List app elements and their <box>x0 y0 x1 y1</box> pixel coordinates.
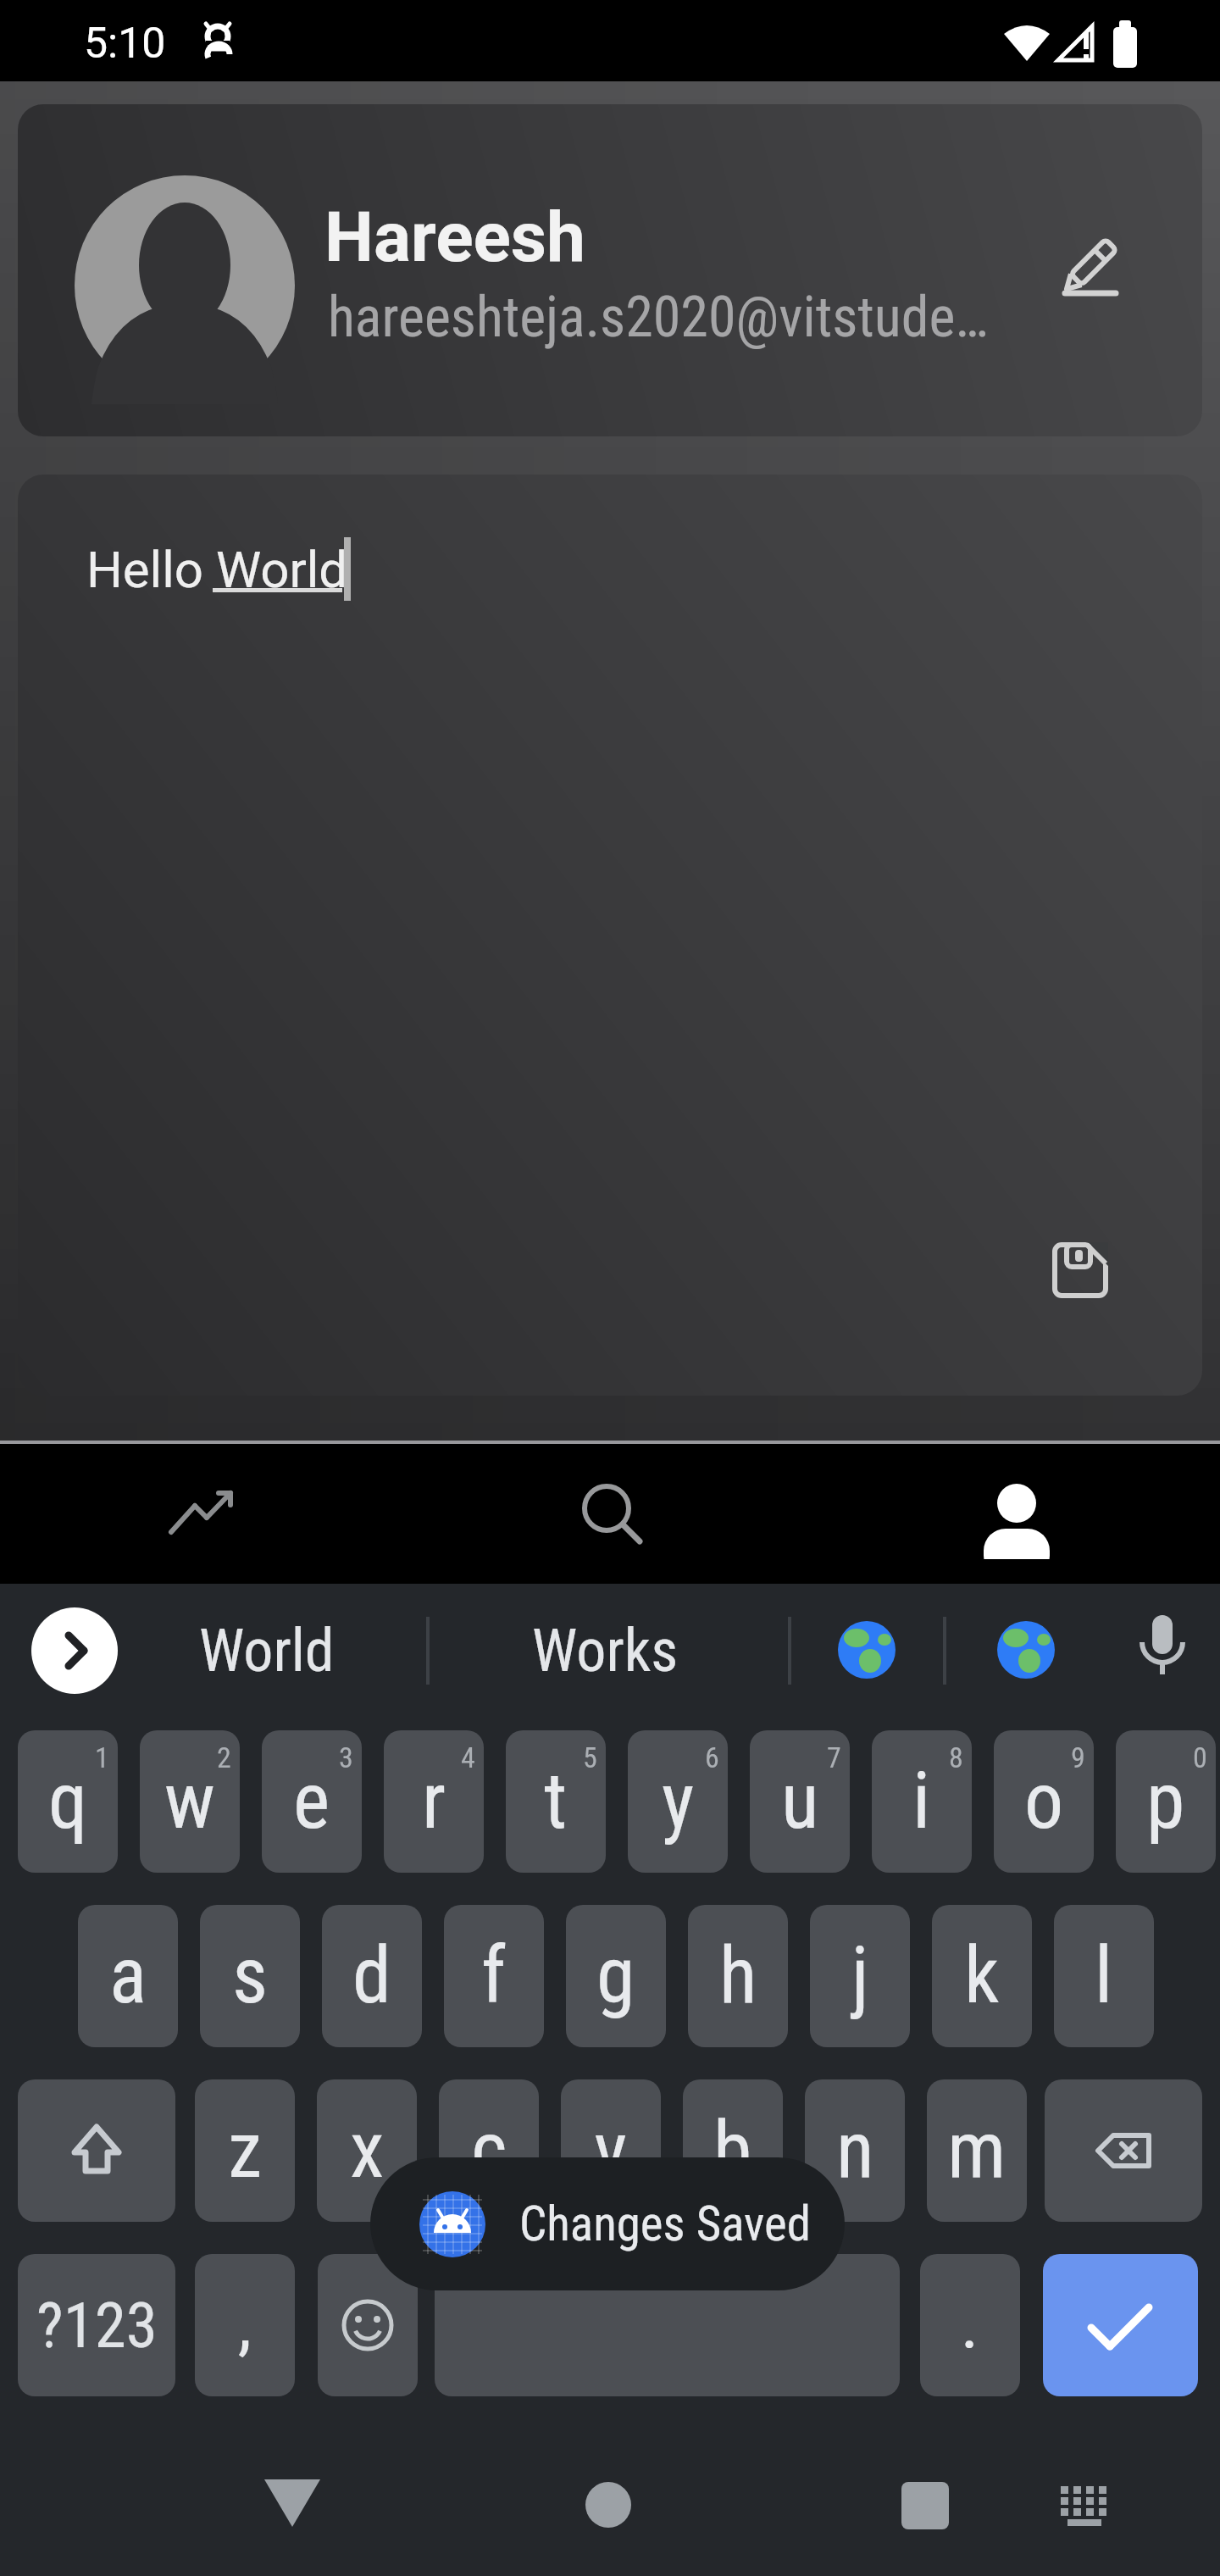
button[interactable]: x <box>317 2079 417 2222</box>
staticText: 6 <box>705 1740 719 1774</box>
button[interactable]: o <box>994 1730 1094 1873</box>
staticText: 4 <box>461 1740 475 1774</box>
button[interactable] <box>264 2479 322 2529</box>
staticText: x <box>350 2105 385 2196</box>
staticText: 0 <box>1193 1740 1207 1774</box>
button[interactable]: s <box>200 1905 300 2047</box>
staticText: f <box>481 1930 507 2022</box>
button[interactable]: v <box>561 2079 661 2222</box>
staticText: p <box>1146 1756 1185 1847</box>
button[interactable] <box>1134 1610 1190 1683</box>
staticText: 2 <box>217 1740 231 1774</box>
staticText: a <box>109 1930 147 2022</box>
button[interactable] <box>996 1620 1056 1679</box>
staticText: Works <box>532 1616 679 1685</box>
button[interactable]: ?123 <box>18 2254 175 2396</box>
staticText: g <box>596 1930 635 2022</box>
button[interactable]: y <box>628 1730 728 1873</box>
staticText: Changes Saved <box>519 2196 812 2252</box>
button[interactable]: u <box>750 1730 850 1873</box>
staticText: u <box>781 1756 819 1847</box>
button[interactable]: a <box>78 1905 178 2047</box>
button[interactable] <box>1052 1242 1108 1298</box>
button[interactable]: c <box>439 2079 539 2222</box>
button[interactable]: j <box>810 1905 910 2047</box>
button[interactable] <box>837 1620 896 1679</box>
staticText: Hello World <box>86 540 348 599</box>
button[interactable]: r <box>384 1730 484 1873</box>
staticText: k <box>964 1930 1000 2022</box>
staticText: 5:10 <box>84 19 166 69</box>
button[interactable]: Hareesh <box>18 104 1202 436</box>
button[interactable]: , <box>195 2254 295 2396</box>
button[interactable]: f <box>444 1905 544 2047</box>
staticText: j <box>851 1930 869 2022</box>
staticText: w <box>164 1756 215 1847</box>
button[interactable]: k <box>932 1905 1032 2047</box>
staticText: r <box>422 1756 446 1847</box>
staticText: z <box>228 2105 263 2196</box>
button[interactable]: d <box>322 1905 422 2047</box>
staticText: h <box>719 1930 757 2022</box>
staticText: n <box>836 2105 874 2196</box>
staticText: World <box>199 1616 335 1685</box>
button[interactable] <box>18 2079 175 2222</box>
staticText: v <box>594 2105 628 2196</box>
button[interactable] <box>1057 2486 1112 2527</box>
staticText: d <box>352 1930 391 2022</box>
staticText: i <box>912 1756 931 1847</box>
staticText: b <box>713 2105 752 2196</box>
staticText: m <box>947 2105 1006 2196</box>
button[interactable]: Works <box>503 1613 707 1689</box>
button[interactable]: h <box>688 1905 788 2047</box>
staticText: 8 <box>949 1740 963 1774</box>
button[interactable]: q <box>18 1730 118 1873</box>
button[interactable] <box>169 1491 242 1535</box>
button[interactable] <box>1045 2079 1202 2222</box>
staticText: Hareesh <box>324 197 585 278</box>
button[interactable] <box>1043 2254 1198 2396</box>
staticText: o <box>1024 1756 1064 1847</box>
staticText: e <box>293 1756 330 1847</box>
staticText: 7 <box>827 1740 841 1774</box>
button[interactable] <box>901 2482 949 2529</box>
button[interactable]: Hello World <box>18 475 1202 1396</box>
button[interactable] <box>318 2254 418 2396</box>
staticText: y <box>662 1756 695 1847</box>
button[interactable] <box>1062 238 1123 299</box>
staticText: t <box>544 1756 568 1847</box>
staticText: . <box>961 2285 979 2365</box>
button[interactable]: l <box>1054 1905 1154 2047</box>
button[interactable]: i <box>872 1730 972 1873</box>
button[interactable]: n <box>805 2079 905 2222</box>
button[interactable] <box>585 2482 631 2528</box>
button[interactable]: m <box>927 2079 1027 2222</box>
button[interactable] <box>31 1607 118 1694</box>
staticText: q <box>48 1756 88 1847</box>
button[interactable]: g <box>566 1905 666 2047</box>
staticText: s <box>232 1930 268 2022</box>
staticText: c <box>471 2105 507 2196</box>
staticText: 5 <box>583 1740 597 1774</box>
staticText: hareeshteja.s2020@vitstude… <box>328 285 989 350</box>
staticText: , <box>238 2285 252 2365</box>
button[interactable]: World <box>165 1613 369 1689</box>
button[interactable]: e <box>262 1730 362 1873</box>
staticText: ?123 <box>36 2288 158 2362</box>
button[interactable]: t <box>506 1730 606 1873</box>
button[interactable] <box>983 1476 1051 1561</box>
button[interactable]: z <box>195 2079 295 2222</box>
button[interactable]: . <box>920 2254 1020 2396</box>
button[interactable]: b <box>683 2079 783 2222</box>
staticText: 9 <box>1071 1740 1085 1774</box>
staticText: l <box>1095 1930 1113 2022</box>
staticText: 1 <box>95 1740 109 1774</box>
button[interactable] <box>578 1480 647 1549</box>
button[interactable]: p <box>1116 1730 1216 1873</box>
staticText: 3 <box>339 1740 353 1774</box>
button[interactable] <box>435 2254 900 2396</box>
button[interactable]: w <box>140 1730 240 1873</box>
